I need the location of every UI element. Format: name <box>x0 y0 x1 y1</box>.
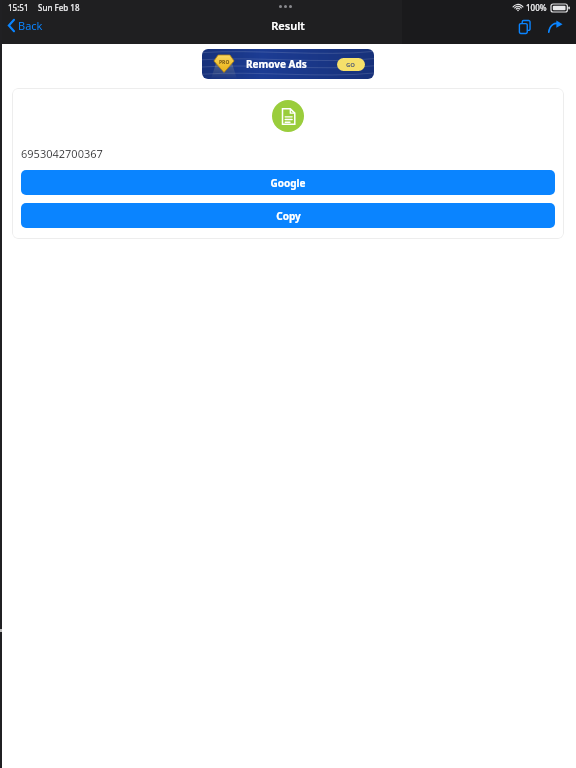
staticText: GO <box>346 61 356 69</box>
staticText: PRO <box>219 59 230 66</box>
button[interactable]: GO <box>337 58 365 71</box>
button[interactable]: Google <box>21 170 555 195</box>
staticText: 100% <box>526 2 547 13</box>
button[interactable]: Share <box>543 14 568 39</box>
staticText: 15:51 <box>8 2 29 13</box>
button[interactable]: Copy <box>21 203 555 228</box>
staticText: Result <box>0 18 576 33</box>
staticText: Sun Feb 18 <box>38 2 80 13</box>
button[interactable]: PRO <box>202 49 374 79</box>
staticText: 6953042700367 <box>21 146 103 161</box>
staticText: Remove Ads <box>246 57 307 71</box>
staticText: Google <box>270 176 306 190</box>
staticText: Back <box>18 18 43 33</box>
button[interactable]: Back <box>4 15 47 36</box>
button[interactable]: Copy <box>512 14 537 39</box>
staticText: Copy <box>276 209 301 223</box>
